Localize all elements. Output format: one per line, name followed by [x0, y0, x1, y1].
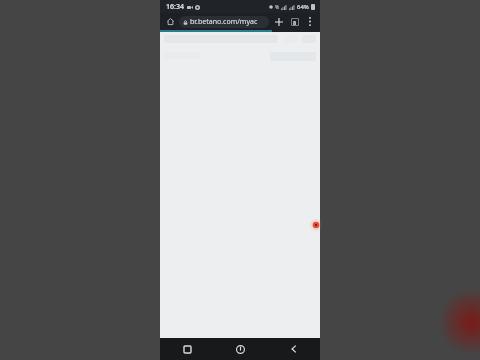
button[interactable]: Home [164, 15, 177, 28]
staticText: 64% [297, 3, 309, 11]
button[interactable]: New tab [272, 15, 285, 28]
staticText: 16:34 [166, 2, 184, 12]
button[interactable]: More options [303, 15, 316, 28]
staticText: br.betano.com/myac [190, 17, 258, 27]
button[interactable]: Chat [309, 218, 323, 232]
button[interactable]: Back [267, 338, 320, 360]
button[interactable]: br.betano.com/myac [179, 16, 269, 28]
button[interactable]: Switch tabs [288, 15, 301, 28]
button[interactable]: Home [214, 338, 267, 360]
staticText: 8 [293, 19, 297, 26]
staticText: % [275, 4, 280, 11]
button[interactable]: Recents [160, 338, 214, 360]
